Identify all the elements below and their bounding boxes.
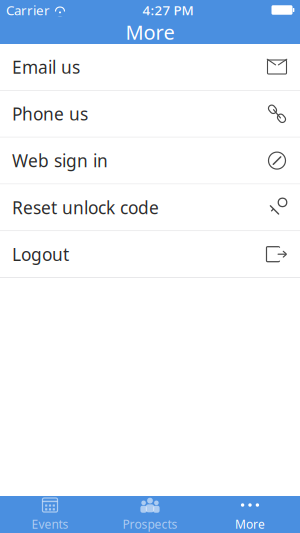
button[interactable]: More	[200, 496, 300, 533]
button[interactable]: Events	[0, 496, 100, 533]
staticText: Events	[31, 516, 68, 532]
staticText: Email us	[12, 55, 80, 78]
staticText: Carrier	[6, 1, 50, 19]
button[interactable]: Web sign in	[0, 138, 300, 184]
staticText: Phone us	[12, 102, 88, 125]
staticText: More	[235, 516, 265, 532]
button[interactable]: Reset unlock code	[0, 184, 300, 231]
button[interactable]: Phone us	[0, 91, 300, 138]
staticText: Logout	[12, 243, 69, 266]
staticText: Web sign in	[12, 149, 108, 172]
button[interactable]: Logout	[0, 231, 300, 278]
button[interactable]: Email us	[0, 44, 300, 91]
staticText: 4:27 PM	[142, 1, 193, 19]
staticText: Reset unlock code	[12, 196, 159, 219]
staticText: More	[125, 19, 174, 45]
button[interactable]: Prospects	[100, 496, 200, 533]
staticText: Prospects	[122, 516, 177, 532]
